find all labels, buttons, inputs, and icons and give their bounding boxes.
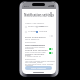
button[interactable]: Push notifications — [25, 43, 53, 49]
staticText: Choose what you hear about — [22, 15, 56, 18]
button[interactable]: Mentions — [36, 25, 49, 28]
button[interactable]: Sound and vibration — [25, 48, 53, 57]
staticText: Email notifications — [25, 35, 46, 38]
staticText: Mentions — [39, 25, 49, 28]
staticText: 9:41 — [24, 4, 29, 7]
staticText: Play a sound for new alerts — [25, 51, 48, 57]
staticText: Nothing — [39, 30, 48, 33]
staticText: All activity — [28, 30, 38, 33]
staticText: You can change these settings — [25, 60, 55, 63]
button[interactable]: Nothing — [36, 30, 48, 33]
button[interactable]: Toggle Sound and vibration — [49, 48, 53, 50]
staticText: at any time from your profile. — [25, 63, 54, 66]
staticText: Weekly summary — [25, 52, 45, 55]
staticText: Notification settings — [22, 13, 56, 17]
button[interactable]: Toggle Email notifications — [49, 35, 53, 37]
staticText: you missed, every Monday — [25, 61, 48, 67]
staticText: that happened each morning — [25, 44, 48, 50]
button[interactable]: Save changes — [25, 66, 52, 70]
staticText: NOTIFY ME ABOUT — [25, 22, 45, 25]
staticText: A short recap of everything — [25, 55, 48, 61]
staticText: Push notifications — [25, 43, 46, 46]
button[interactable]: Direct messages — [25, 25, 45, 28]
staticText: Save changes — [31, 67, 47, 70]
staticText: Alerts on this device — [25, 46, 45, 49]
button[interactable]: Toggle Weekly summary — [49, 52, 53, 54]
staticText: Direct messages — [28, 25, 45, 28]
staticText: Get a digest of everything — [25, 38, 48, 44]
button[interactable]: Weekly summary — [25, 52, 53, 67]
staticText: Sound and vibration — [25, 48, 48, 51]
button[interactable]: All activity — [25, 30, 38, 33]
button[interactable]: Email notifications — [25, 35, 53, 50]
